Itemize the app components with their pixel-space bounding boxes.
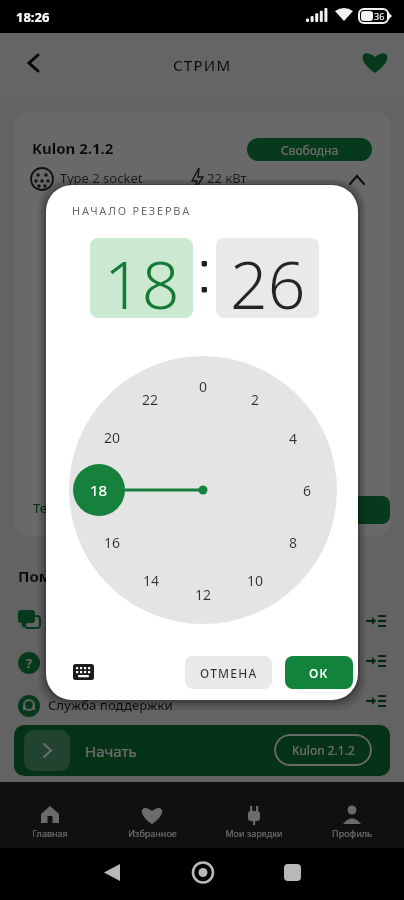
staticText: Свободна [281,142,339,158]
button[interactable]: Избранное [107,782,197,848]
staticText: 18 [90,480,108,500]
button[interactable] [14,43,54,83]
staticText: 26 [230,238,306,318]
staticText: 18:26 [16,8,50,26]
staticText: Начать [85,741,137,761]
staticText: Type 2 socket [60,169,143,187]
staticText: Помощь [18,566,84,586]
staticText: Избранное [128,827,177,839]
staticText: 8 [289,533,298,552]
button[interactable] [356,42,396,82]
button[interactable]: ОТМЕНА [185,656,272,689]
button[interactable]: 18 [73,464,125,516]
button[interactable] [300,496,390,524]
staticText: ? [26,654,33,672]
staticText: 14 [143,571,160,590]
staticText: 0 [199,377,208,396]
staticText: СТРИМ [173,55,232,75]
staticText: 4 [289,429,298,448]
staticText: 10 [247,571,264,590]
staticText: 36 [374,10,385,22]
staticText: 22 [142,390,159,409]
staticText: 2 [251,390,260,409]
staticText: Kulon 2.1.2 [32,138,114,158]
button[interactable] [73,658,113,692]
staticText: Мои зарядки [225,827,283,839]
staticText: 12 [195,585,212,604]
staticText: Главная [32,827,68,839]
staticText: Тел. поддержки [33,499,135,517]
staticText: 18 [104,238,180,318]
button[interactable]: Главная [5,782,95,848]
staticText: ОК [309,665,329,681]
staticText: 16 [104,533,121,552]
staticText: Профиль [332,827,372,839]
staticText: НАЧАЛО РЕЗЕРВА [72,203,192,218]
staticText: 20 [104,428,121,447]
button[interactable]: Свободна [247,138,372,161]
button[interactable]: 18 [90,238,193,318]
button[interactable]: Начать [14,725,390,776]
button[interactable]: 26 [216,238,319,318]
button[interactable]: ОК [285,656,353,689]
staticText: 6 [303,481,312,500]
staticText: Kulon 2.1.2 [292,742,355,758]
staticText: Служба поддержки [48,696,173,714]
button[interactable]: Мои зарядки [209,782,299,848]
button[interactable]: Профиль [307,782,397,848]
staticText: ОТМЕНА [200,665,258,681]
staticText: 22 кВт [207,169,247,187]
